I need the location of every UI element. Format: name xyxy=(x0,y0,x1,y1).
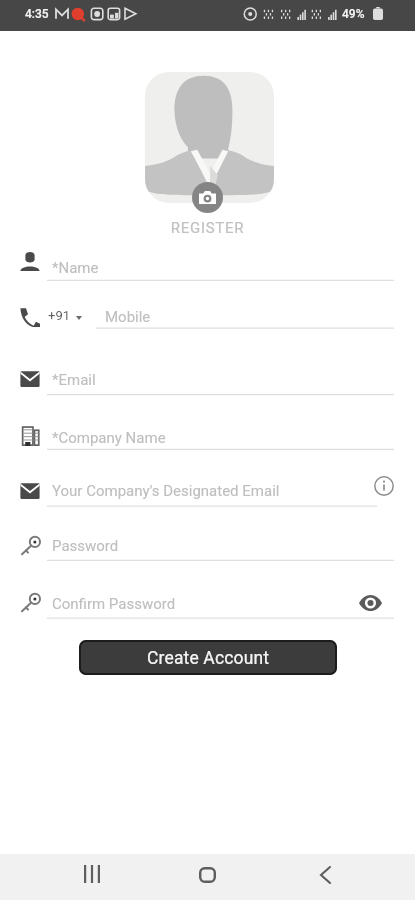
button[interactable]: Change photo xyxy=(192,182,223,213)
staticText: Confirm Password xyxy=(52,595,176,613)
button[interactable]: Your Company's Designated Email xyxy=(0,473,415,516)
button[interactable]: *Company Name xyxy=(0,418,415,459)
staticText: Your Company's Designated Email xyxy=(52,482,280,500)
button[interactable]: +91 xyxy=(0,299,415,338)
button[interactable]: Create Account xyxy=(79,640,337,675)
button[interactable]: *Name xyxy=(0,243,415,290)
button[interactable]: Show password xyxy=(359,594,382,612)
button[interactable]: Profile photo xyxy=(145,72,274,203)
staticText: *Email xyxy=(52,371,96,389)
staticText: *Name xyxy=(52,259,99,277)
staticText: 49% xyxy=(342,7,365,21)
button[interactable]: Home xyxy=(172,854,242,900)
staticText: Create Account xyxy=(147,648,270,669)
staticText: 4:35 xyxy=(25,7,49,21)
staticText: +91 xyxy=(48,308,70,323)
button[interactable]: Back xyxy=(289,854,359,900)
button[interactable]: Recent apps xyxy=(57,854,127,900)
staticText: REGISTER xyxy=(0,219,415,237)
staticText: *Company Name xyxy=(52,429,166,447)
button[interactable]: Password xyxy=(0,528,415,570)
button[interactable]: Confirm Password xyxy=(0,585,415,628)
button[interactable]: Info xyxy=(374,476,394,496)
button[interactable]: *Email xyxy=(0,361,415,405)
staticText: Password xyxy=(52,537,119,555)
staticText: Mobile xyxy=(105,308,151,326)
